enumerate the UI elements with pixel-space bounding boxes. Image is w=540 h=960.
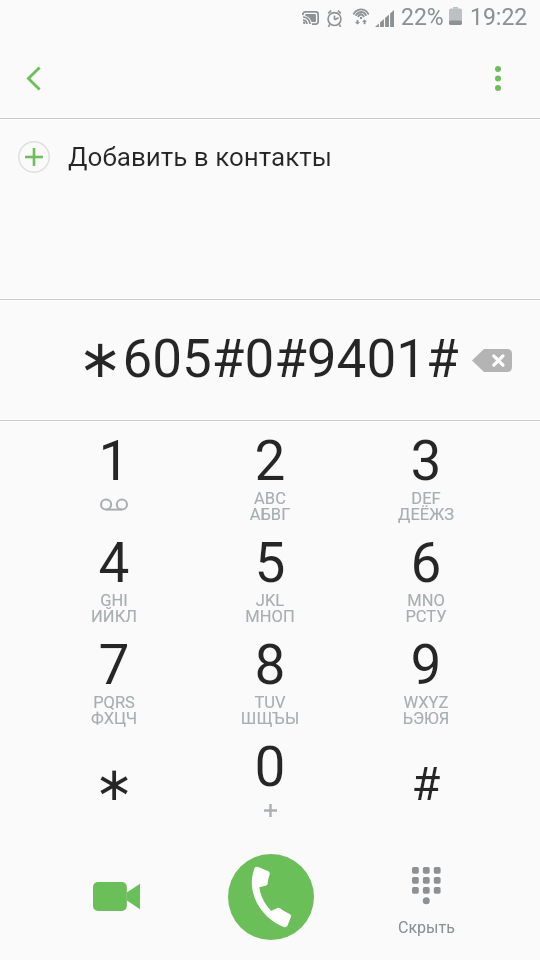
staticText: Скрыть bbox=[398, 918, 455, 937]
staticText: ЬЭЮЯ bbox=[348, 709, 504, 728]
button[interactable]: 8 bbox=[192, 631, 348, 733]
staticText: ШЩЪЫ bbox=[192, 709, 348, 728]
staticText: АБВГ bbox=[192, 505, 348, 524]
staticText: 8 bbox=[192, 633, 348, 697]
staticText: 1 bbox=[36, 429, 192, 493]
staticText: МНОП bbox=[192, 607, 348, 626]
staticText: JKL bbox=[192, 591, 348, 610]
staticText: PQRS bbox=[36, 693, 192, 712]
button[interactable]: 0 bbox=[192, 733, 348, 835]
button[interactable]: 6 bbox=[348, 529, 504, 631]
button[interactable]: 3 bbox=[348, 427, 504, 529]
staticText: DEF bbox=[348, 489, 504, 508]
staticText: Добавить в контакты bbox=[68, 142, 332, 172]
staticText: 2 bbox=[192, 429, 348, 493]
staticText: 19:22 bbox=[470, 4, 528, 31]
staticText: WXYZ bbox=[348, 693, 504, 712]
staticText: MNO bbox=[348, 591, 504, 610]
staticText: 5 bbox=[192, 531, 348, 595]
staticText: 7 bbox=[36, 633, 192, 697]
staticText: TUV bbox=[192, 693, 348, 712]
staticText: ФХЦЧ bbox=[36, 709, 192, 728]
staticText: 9 bbox=[348, 633, 504, 697]
staticText: ДЕЁЖЗ bbox=[348, 505, 504, 524]
staticText: ИЙКЛ bbox=[36, 607, 192, 626]
staticText: GHI bbox=[36, 591, 192, 610]
staticText: 6 bbox=[348, 531, 504, 595]
button[interactable]: Call bbox=[228, 854, 314, 940]
button[interactable]: 1 bbox=[36, 427, 192, 529]
button[interactable]: 7 bbox=[36, 631, 192, 733]
staticText: ABC bbox=[192, 489, 348, 508]
staticText: 0 bbox=[192, 735, 348, 799]
button[interactable]: ∗ bbox=[36, 733, 192, 835]
staticText: 22% bbox=[401, 4, 444, 31]
button[interactable]: More options bbox=[468, 48, 528, 108]
staticText: ∗605#0#9401# bbox=[78, 328, 459, 390]
staticText: ∗ bbox=[36, 756, 192, 811]
staticText: РСТУ bbox=[348, 607, 504, 626]
button[interactable]: 9 bbox=[348, 631, 504, 733]
button[interactable]: 2 bbox=[192, 427, 348, 529]
button[interactable]: Video call bbox=[74, 854, 158, 938]
button[interactable]: Back bbox=[4, 48, 64, 108]
button[interactable]: Backspace bbox=[464, 332, 520, 388]
staticText: 4 bbox=[36, 531, 192, 595]
button[interactable]: 4 bbox=[36, 529, 192, 631]
staticText: # bbox=[348, 756, 504, 811]
staticText: 3 bbox=[348, 429, 504, 493]
button[interactable]: Скрыть bbox=[381, 867, 471, 937]
button[interactable]: 5 bbox=[192, 529, 348, 631]
button[interactable]: Добавить в контакты bbox=[0, 119, 540, 195]
button[interactable]: # bbox=[348, 733, 504, 835]
